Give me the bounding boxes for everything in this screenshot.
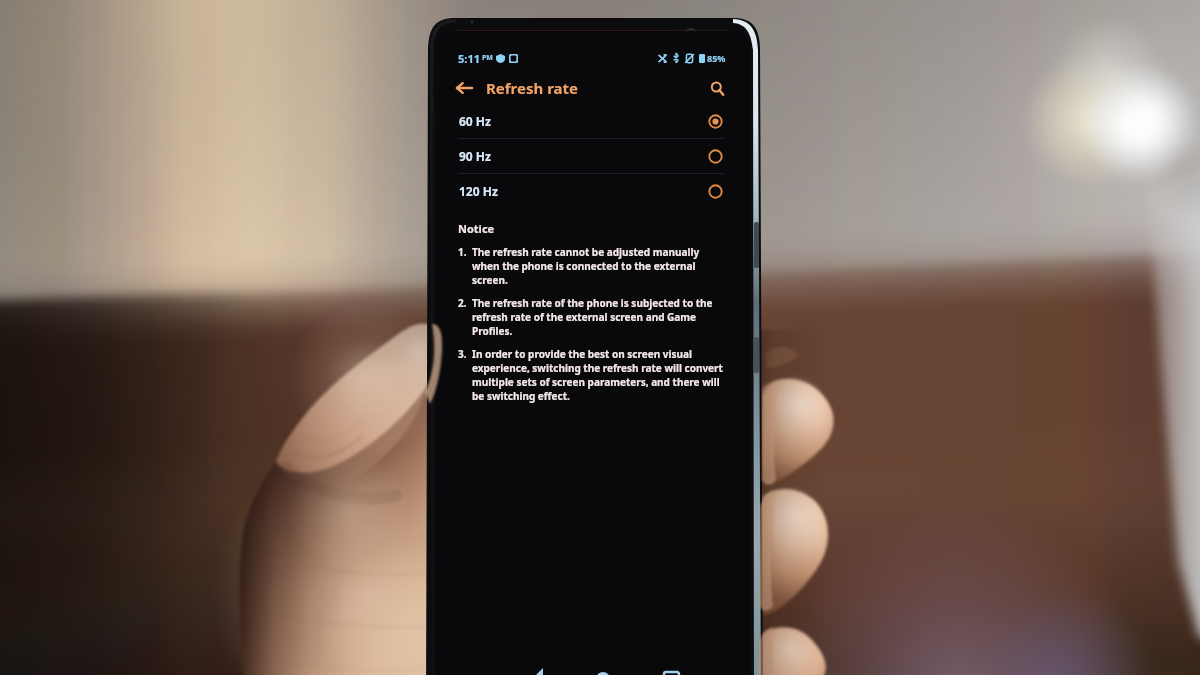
staticText: The refresh rate of the phone is subject… — [472, 296, 713, 338]
staticText: 5:11 — [458, 51, 480, 66]
staticText: 85% — [707, 52, 726, 64]
staticText: 120 Hz — [459, 183, 498, 199]
button[interactable]: Search — [706, 77, 728, 99]
button[interactable]: Home — [592, 659, 618, 675]
staticText: 3. — [458, 347, 472, 361]
staticText: PM — [482, 53, 493, 63]
button[interactable]: 60 Hz — [436, 104, 750, 138]
staticText: Refresh rate — [486, 78, 578, 98]
staticText: 60 Hz — [459, 113, 491, 129]
staticText: In order to provide the best on screen v… — [472, 347, 723, 403]
button[interactable]: Back — [453, 77, 475, 99]
button[interactable]: Back — [526, 659, 552, 675]
staticText: 90 Hz — [459, 148, 491, 164]
staticText: 1. — [458, 245, 472, 259]
button[interactable]: 90 Hz — [436, 139, 750, 173]
button[interactable]: 120 Hz — [436, 174, 750, 208]
staticText: The refresh rate cannot be adjusted manu… — [472, 245, 700, 287]
staticText: 2. — [458, 296, 472, 310]
button[interactable]: Recents — [658, 659, 684, 675]
staticText: Notice — [458, 221, 495, 236]
